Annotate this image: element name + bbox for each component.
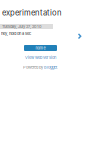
staticText: experimentation (2, 8, 62, 17)
button[interactable]: hey, hold on a sec (0, 31, 31, 36)
button[interactable]: View web version (25, 55, 56, 60)
staticText: Tuesday, July 27, 2010 (2, 24, 42, 29)
staticText: hey, hold on a sec (1, 31, 31, 36)
staticText: home (35, 46, 45, 50)
button[interactable]: Expand post (0, 0, 85, 153)
staticText: Blogger. (44, 65, 58, 70)
button[interactable]: Blogger. (44, 65, 58, 70)
staticText: Powered by (23, 65, 44, 70)
button[interactable]: home (24, 45, 57, 51)
staticText: View web version (25, 55, 56, 60)
